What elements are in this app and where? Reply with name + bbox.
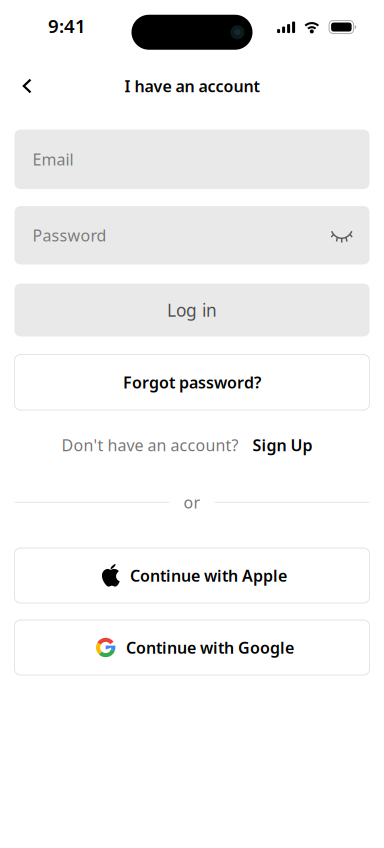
button[interactable]: Forgot password?: [0, 354, 384, 410]
staticText: Sign Up: [252, 434, 312, 456]
staticText: Email: [32, 149, 73, 170]
staticText: Log in: [167, 298, 217, 321]
button[interactable]: Continue with Google: [0, 620, 384, 675]
staticText: Continue with Apple: [130, 565, 287, 586]
staticText: I have an account: [124, 75, 259, 97]
staticText: Don't have an account?: [61, 434, 238, 456]
staticText: Password: [32, 225, 106, 246]
button[interactable]: Back: [0, 64, 48, 108]
button[interactable]: Show password: [321, 217, 352, 253]
button[interactable]: Log in: [0, 283, 384, 336]
button[interactable]: Sign Up: [238, 428, 312, 462]
staticText: or: [183, 492, 200, 513]
button[interactable]: Continue with Apple: [0, 548, 384, 603]
staticText: Continue with Google: [126, 637, 294, 658]
staticText: 9:41: [48, 13, 86, 38]
staticText: Forgot password?: [123, 372, 261, 393]
